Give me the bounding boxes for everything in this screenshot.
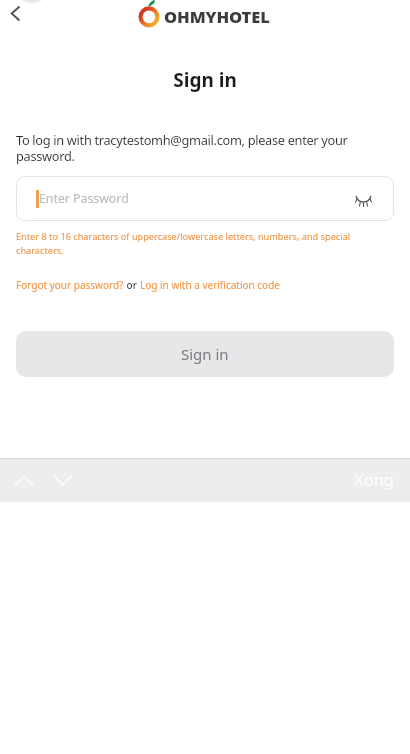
staticText: Enter 8 to 16 characters of uppercase/lo… xyxy=(16,230,394,256)
staticText: Sign in xyxy=(0,67,410,93)
button[interactable]: Xong xyxy=(354,468,394,490)
staticText: Xong xyxy=(354,468,394,490)
button[interactable]: Show password xyxy=(351,187,375,211)
staticText: To log in with tracytestomh@gmail.com, p… xyxy=(16,131,394,165)
staticText: or xyxy=(124,278,140,292)
staticText: OHMYHOTEL xyxy=(164,5,270,28)
button[interactable]: Enter Password xyxy=(16,176,394,221)
button[interactable]: Back xyxy=(0,0,31,29)
button[interactable]: Forgot your password? xyxy=(16,278,124,292)
button[interactable]: Log in with a verification code xyxy=(140,278,280,292)
button[interactable]: Sign in xyxy=(16,331,394,377)
staticText: Sign in xyxy=(181,344,229,364)
staticText: Enter Password xyxy=(39,190,129,207)
